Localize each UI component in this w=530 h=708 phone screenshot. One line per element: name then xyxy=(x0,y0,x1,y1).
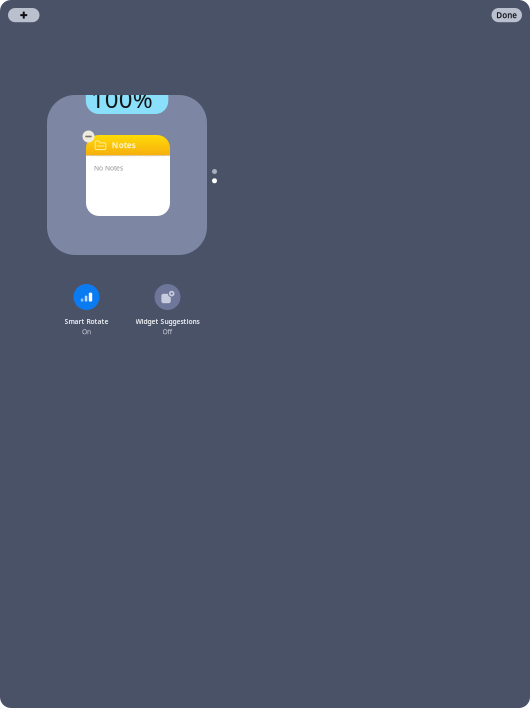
staticText: Widget Suggestions xyxy=(135,317,199,326)
button[interactable]: Widget Suggestions xyxy=(127,284,208,336)
staticText: Smart Rotate xyxy=(64,317,108,326)
button[interactable]: Add Widget xyxy=(8,8,39,22)
button[interactable]: Smart Rotate xyxy=(46,284,127,336)
staticText: Done xyxy=(496,10,517,20)
staticText: Notes xyxy=(112,140,136,150)
staticText: No Notes xyxy=(94,163,123,172)
button[interactable]: Done xyxy=(491,8,522,22)
button[interactable]: Remove Widget xyxy=(82,130,94,142)
staticText: On xyxy=(82,327,91,336)
staticText: Off xyxy=(162,327,172,336)
staticText: 100% xyxy=(91,83,153,114)
